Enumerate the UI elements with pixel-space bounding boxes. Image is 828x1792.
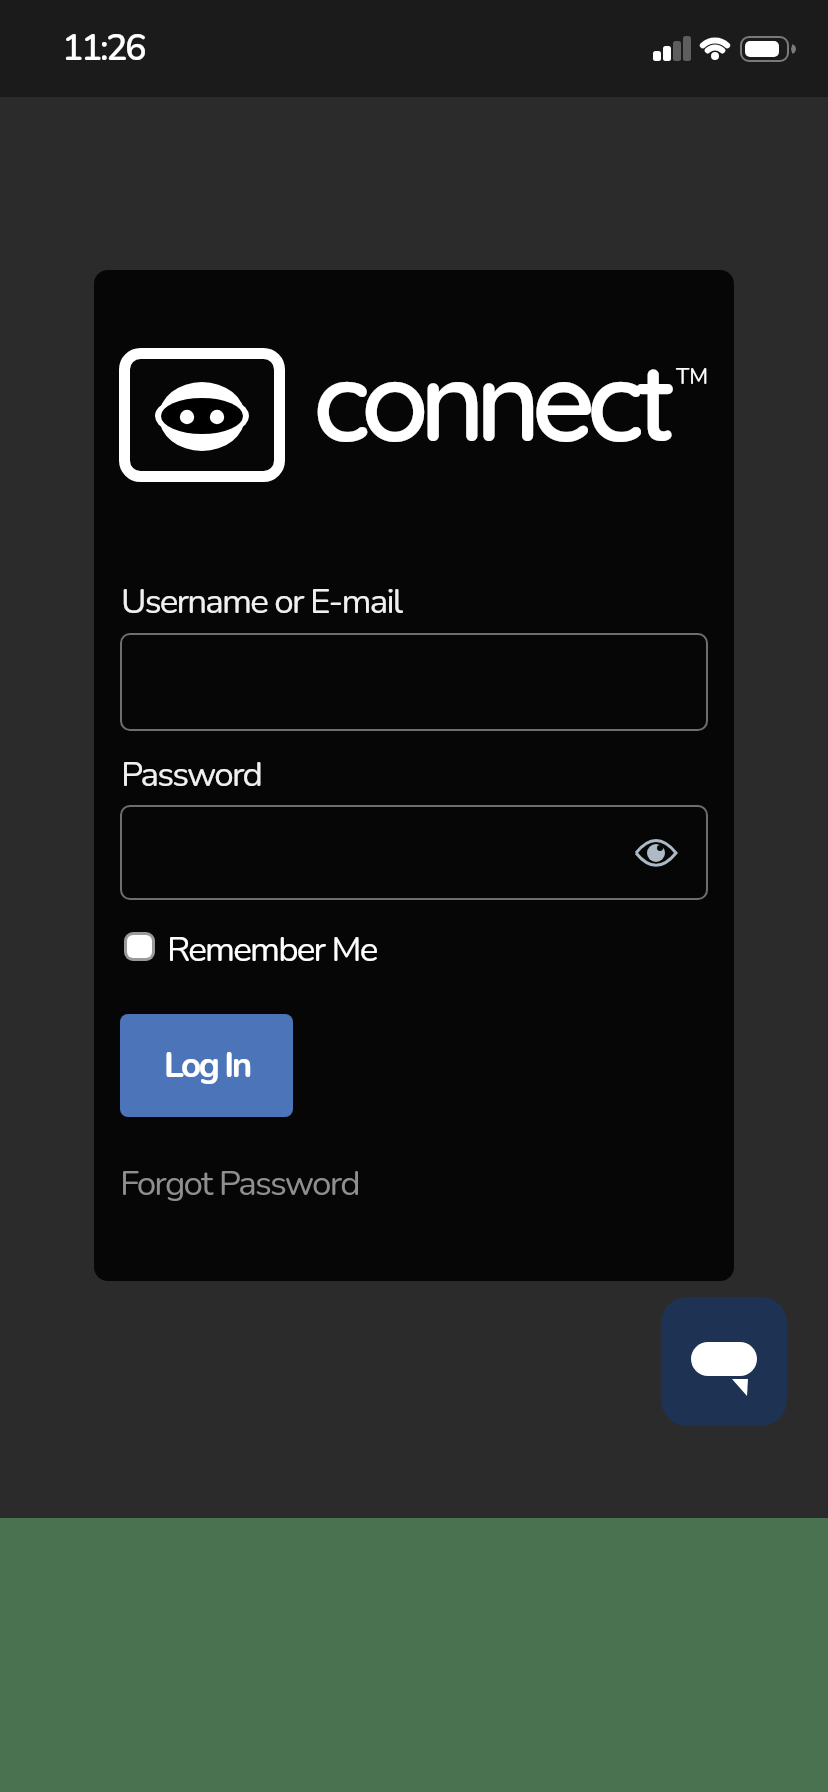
staticText: Password: [121, 751, 262, 799]
staticText: 11:26: [62, 24, 144, 73]
staticText: connect: [313, 331, 669, 469]
button[interactable]: Remember Me: [120, 922, 460, 970]
staticText: TM: [676, 362, 709, 392]
button[interactable]: [661, 1297, 787, 1426]
button[interactable]: Log In: [120, 1014, 293, 1117]
button[interactable]: Forgot Password: [120, 1160, 359, 1208]
staticText: Remember Me: [167, 926, 377, 974]
button[interactable]: [120, 805, 708, 900]
button[interactable]: [120, 633, 708, 731]
staticText: Username or E-mail: [121, 578, 402, 626]
button[interactable]: [636, 839, 676, 867]
staticText: Log In: [164, 1042, 250, 1090]
